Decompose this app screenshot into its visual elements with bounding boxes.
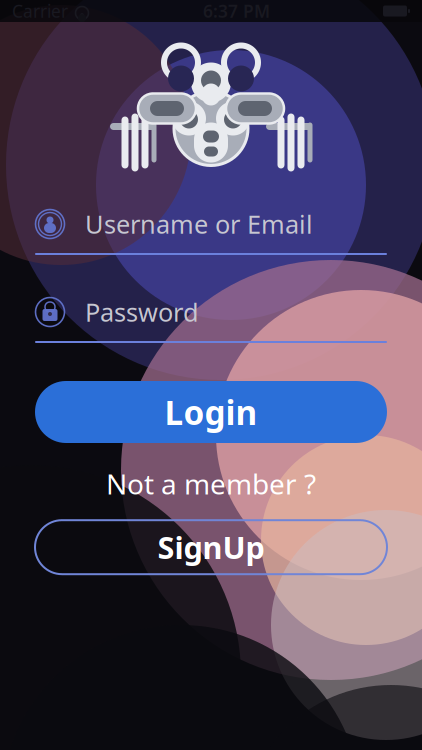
staticText: Carrier	[12, 0, 68, 22]
staticText: Not a member ?	[106, 465, 316, 502]
staticText: Password	[85, 295, 199, 329]
staticText: SignUp	[157, 527, 264, 567]
staticText: Username or Email	[85, 207, 313, 241]
staticText: 6:37 PM	[203, 0, 270, 22]
button[interactable]: Login	[35, 381, 387, 443]
staticText: Login	[164, 390, 257, 434]
button[interactable]: SignUp	[35, 520, 387, 574]
